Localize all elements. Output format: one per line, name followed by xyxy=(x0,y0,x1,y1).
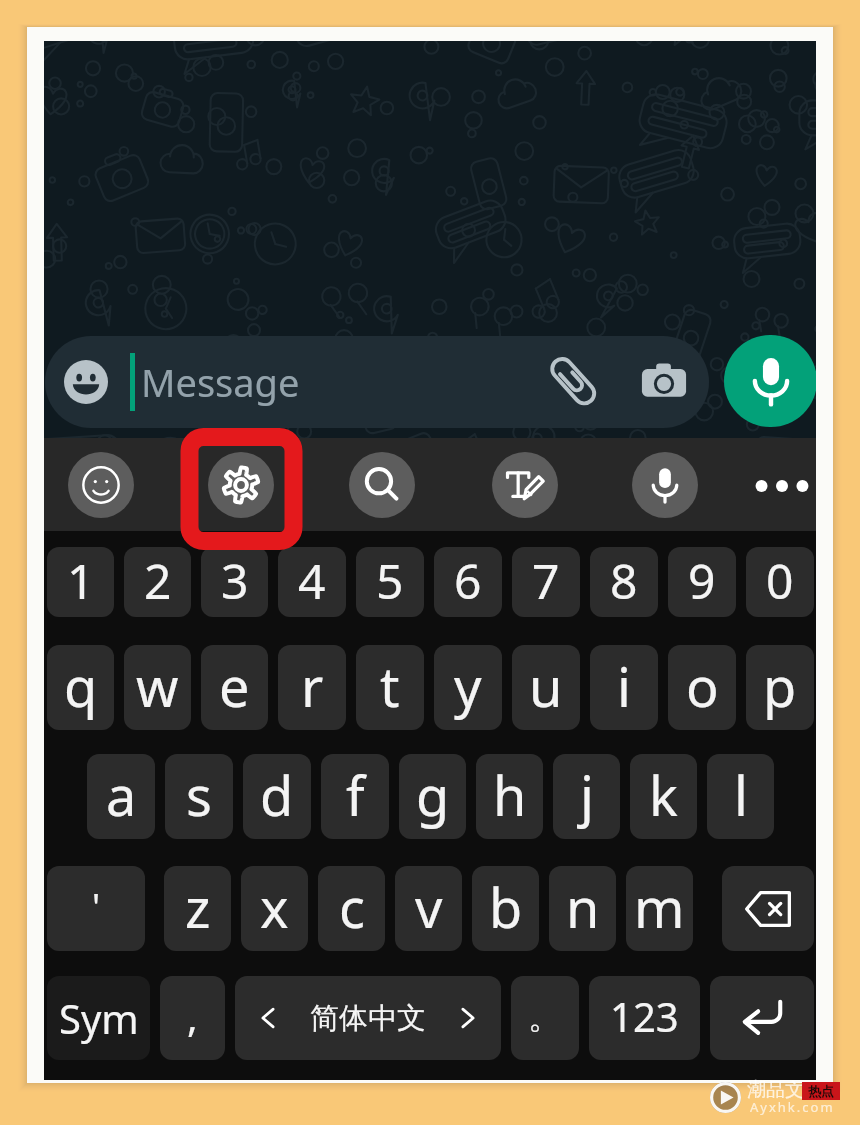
staticText: j xyxy=(580,758,594,832)
button[interactable]: Emoji xyxy=(45,336,709,428)
button[interactable]: Backspace xyxy=(722,866,814,951)
button[interactable]: 1 xyxy=(47,547,114,617)
staticText: 。 xyxy=(528,995,562,1038)
staticText: 0 xyxy=(766,548,794,613)
button[interactable]: m xyxy=(626,866,693,951)
staticText: k xyxy=(649,758,678,832)
staticText: Sym xyxy=(59,991,139,1045)
staticText: 8 xyxy=(610,548,638,613)
staticText: t xyxy=(380,649,400,723)
staticText: x xyxy=(260,870,289,944)
button[interactable]: Voice input xyxy=(632,452,698,518)
button[interactable]: Settings xyxy=(208,452,274,518)
button[interactable]: q xyxy=(47,645,114,730)
button[interactable]: 6 xyxy=(434,547,502,617)
staticText: w xyxy=(136,649,179,723)
button[interactable]: Enter xyxy=(710,976,814,1060)
staticText: q xyxy=(64,649,98,723)
button[interactable]: w xyxy=(124,645,191,730)
button[interactable]: p xyxy=(746,645,814,730)
staticText: 7 xyxy=(532,548,560,613)
button[interactable]: Attach xyxy=(551,359,597,405)
staticText: h xyxy=(493,758,527,832)
staticText: c xyxy=(339,870,365,944)
staticText: 2 xyxy=(144,548,172,613)
staticText: s xyxy=(186,758,212,832)
staticText: e xyxy=(219,649,250,723)
button[interactable]: e xyxy=(201,645,268,730)
button[interactable]: 7 xyxy=(512,547,580,617)
button[interactable]: i xyxy=(590,645,658,730)
staticText: Ayxhk.com xyxy=(750,1098,835,1116)
staticText: 潮品文 xyxy=(747,1078,804,1102)
button[interactable]: 0 xyxy=(746,547,814,617)
button[interactable]: Switch language xyxy=(235,976,501,1060)
staticText: a xyxy=(106,758,137,832)
button[interactable]: v xyxy=(395,866,462,951)
button[interactable]: More options xyxy=(751,455,813,517)
button[interactable]: 9 xyxy=(668,547,736,617)
staticText: 123 xyxy=(610,989,679,1043)
button[interactable]: l xyxy=(707,754,774,839)
button[interactable]: z xyxy=(164,866,231,951)
button[interactable]: j xyxy=(553,754,620,839)
button[interactable]: y xyxy=(434,645,502,730)
staticText: u xyxy=(529,649,563,723)
staticText: p xyxy=(763,649,797,723)
staticText: 热点 xyxy=(808,1083,834,1099)
button[interactable]: Sym xyxy=(47,976,150,1060)
button[interactable]: c xyxy=(318,866,385,951)
button[interactable]: Camera xyxy=(641,359,687,405)
button[interactable]: 。 xyxy=(511,976,579,1060)
button[interactable]: 8 xyxy=(590,547,658,617)
staticText: 3 xyxy=(221,548,249,613)
staticText: y xyxy=(454,649,482,723)
staticText: , xyxy=(187,989,198,1043)
button[interactable]: f xyxy=(321,754,389,839)
staticText: z xyxy=(185,870,211,944)
button[interactable]: 123 xyxy=(589,976,700,1060)
button[interactable]: x xyxy=(241,866,308,951)
staticText: f xyxy=(346,758,365,832)
staticText: 简体中文 xyxy=(310,1000,426,1037)
button[interactable]: Emoji xyxy=(64,360,108,404)
staticText: o xyxy=(686,649,719,723)
button[interactable]: a xyxy=(87,754,155,839)
button[interactable]: g xyxy=(399,754,466,839)
staticText: i xyxy=(617,649,631,723)
button[interactable]: k xyxy=(630,754,697,839)
button[interactable]: ' xyxy=(47,866,145,951)
button[interactable]: h xyxy=(476,754,543,839)
staticText: n xyxy=(566,870,600,944)
button[interactable]: d xyxy=(243,754,311,839)
staticText: 9 xyxy=(688,548,716,613)
button[interactable]: Search xyxy=(349,452,415,518)
button[interactable]: 2 xyxy=(124,547,191,617)
button[interactable]: Stickers xyxy=(68,452,134,518)
staticText: 5 xyxy=(376,548,404,613)
button[interactable]: 4 xyxy=(278,547,346,617)
button[interactable]: n xyxy=(549,866,616,951)
button[interactable]: t xyxy=(356,645,424,730)
button[interactable]: r xyxy=(278,645,346,730)
button[interactable]: b xyxy=(472,866,539,951)
staticText: g xyxy=(416,758,450,832)
button[interactable]: Record voice message xyxy=(724,335,816,427)
staticText: d xyxy=(260,758,294,832)
button[interactable]: Handwriting xyxy=(492,452,558,518)
button[interactable]: u xyxy=(512,645,580,730)
staticText: r xyxy=(301,649,324,723)
staticText: m xyxy=(634,870,685,944)
staticText: Message xyxy=(141,356,300,408)
staticText: 1 xyxy=(67,548,95,613)
button[interactable]: , xyxy=(160,976,225,1060)
button[interactable]: 5 xyxy=(356,547,424,617)
staticText: v xyxy=(415,870,443,944)
staticText: 6 xyxy=(454,548,482,613)
staticText: b xyxy=(489,870,523,944)
button[interactable]: 3 xyxy=(201,547,268,617)
button[interactable]: o xyxy=(668,645,736,730)
button[interactable]: s xyxy=(165,754,233,839)
staticText: ' xyxy=(92,882,101,931)
staticText: 4 xyxy=(298,548,326,613)
